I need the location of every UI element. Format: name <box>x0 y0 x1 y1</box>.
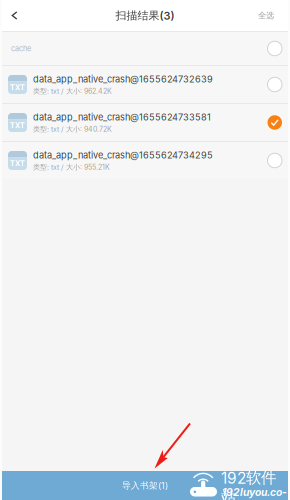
staticText: data_app_native_crash@1655624734295 <box>33 149 213 161</box>
staticText: TXT <box>10 159 25 168</box>
staticText: data_app_native_crash@1655624733581 <box>33 111 211 123</box>
staticText: 192luyou.com <box>222 486 287 500</box>
button[interactable]: 导入书架(1) <box>2 471 288 500</box>
button[interactable]: TXT <box>2 142 288 179</box>
button[interactable]: Back <box>2 0 27 31</box>
staticText: 192软件站 <box>221 468 276 500</box>
staticText: 类型: txt / 大小: 940.72K <box>33 125 112 133</box>
staticText: 类型: txt / 大小: 955.21K <box>33 163 110 171</box>
staticText: 全选 <box>258 10 274 21</box>
staticText: 类型: txt / 大小: 962.42K <box>33 87 112 95</box>
staticText: 导入书架(1) <box>122 480 168 491</box>
staticText: 扫描结果(3) <box>115 9 174 22</box>
button[interactable]: 全选 <box>244 0 288 31</box>
staticText: TXT <box>10 83 25 92</box>
staticText: TXT <box>10 121 25 130</box>
button[interactable]: cache <box>2 32 288 65</box>
button[interactable]: TXT <box>2 104 288 141</box>
staticText: cache <box>11 44 31 53</box>
staticText: data_app_native_crash@1655624732639 <box>33 73 213 85</box>
button[interactable]: TXT <box>2 66 288 103</box>
